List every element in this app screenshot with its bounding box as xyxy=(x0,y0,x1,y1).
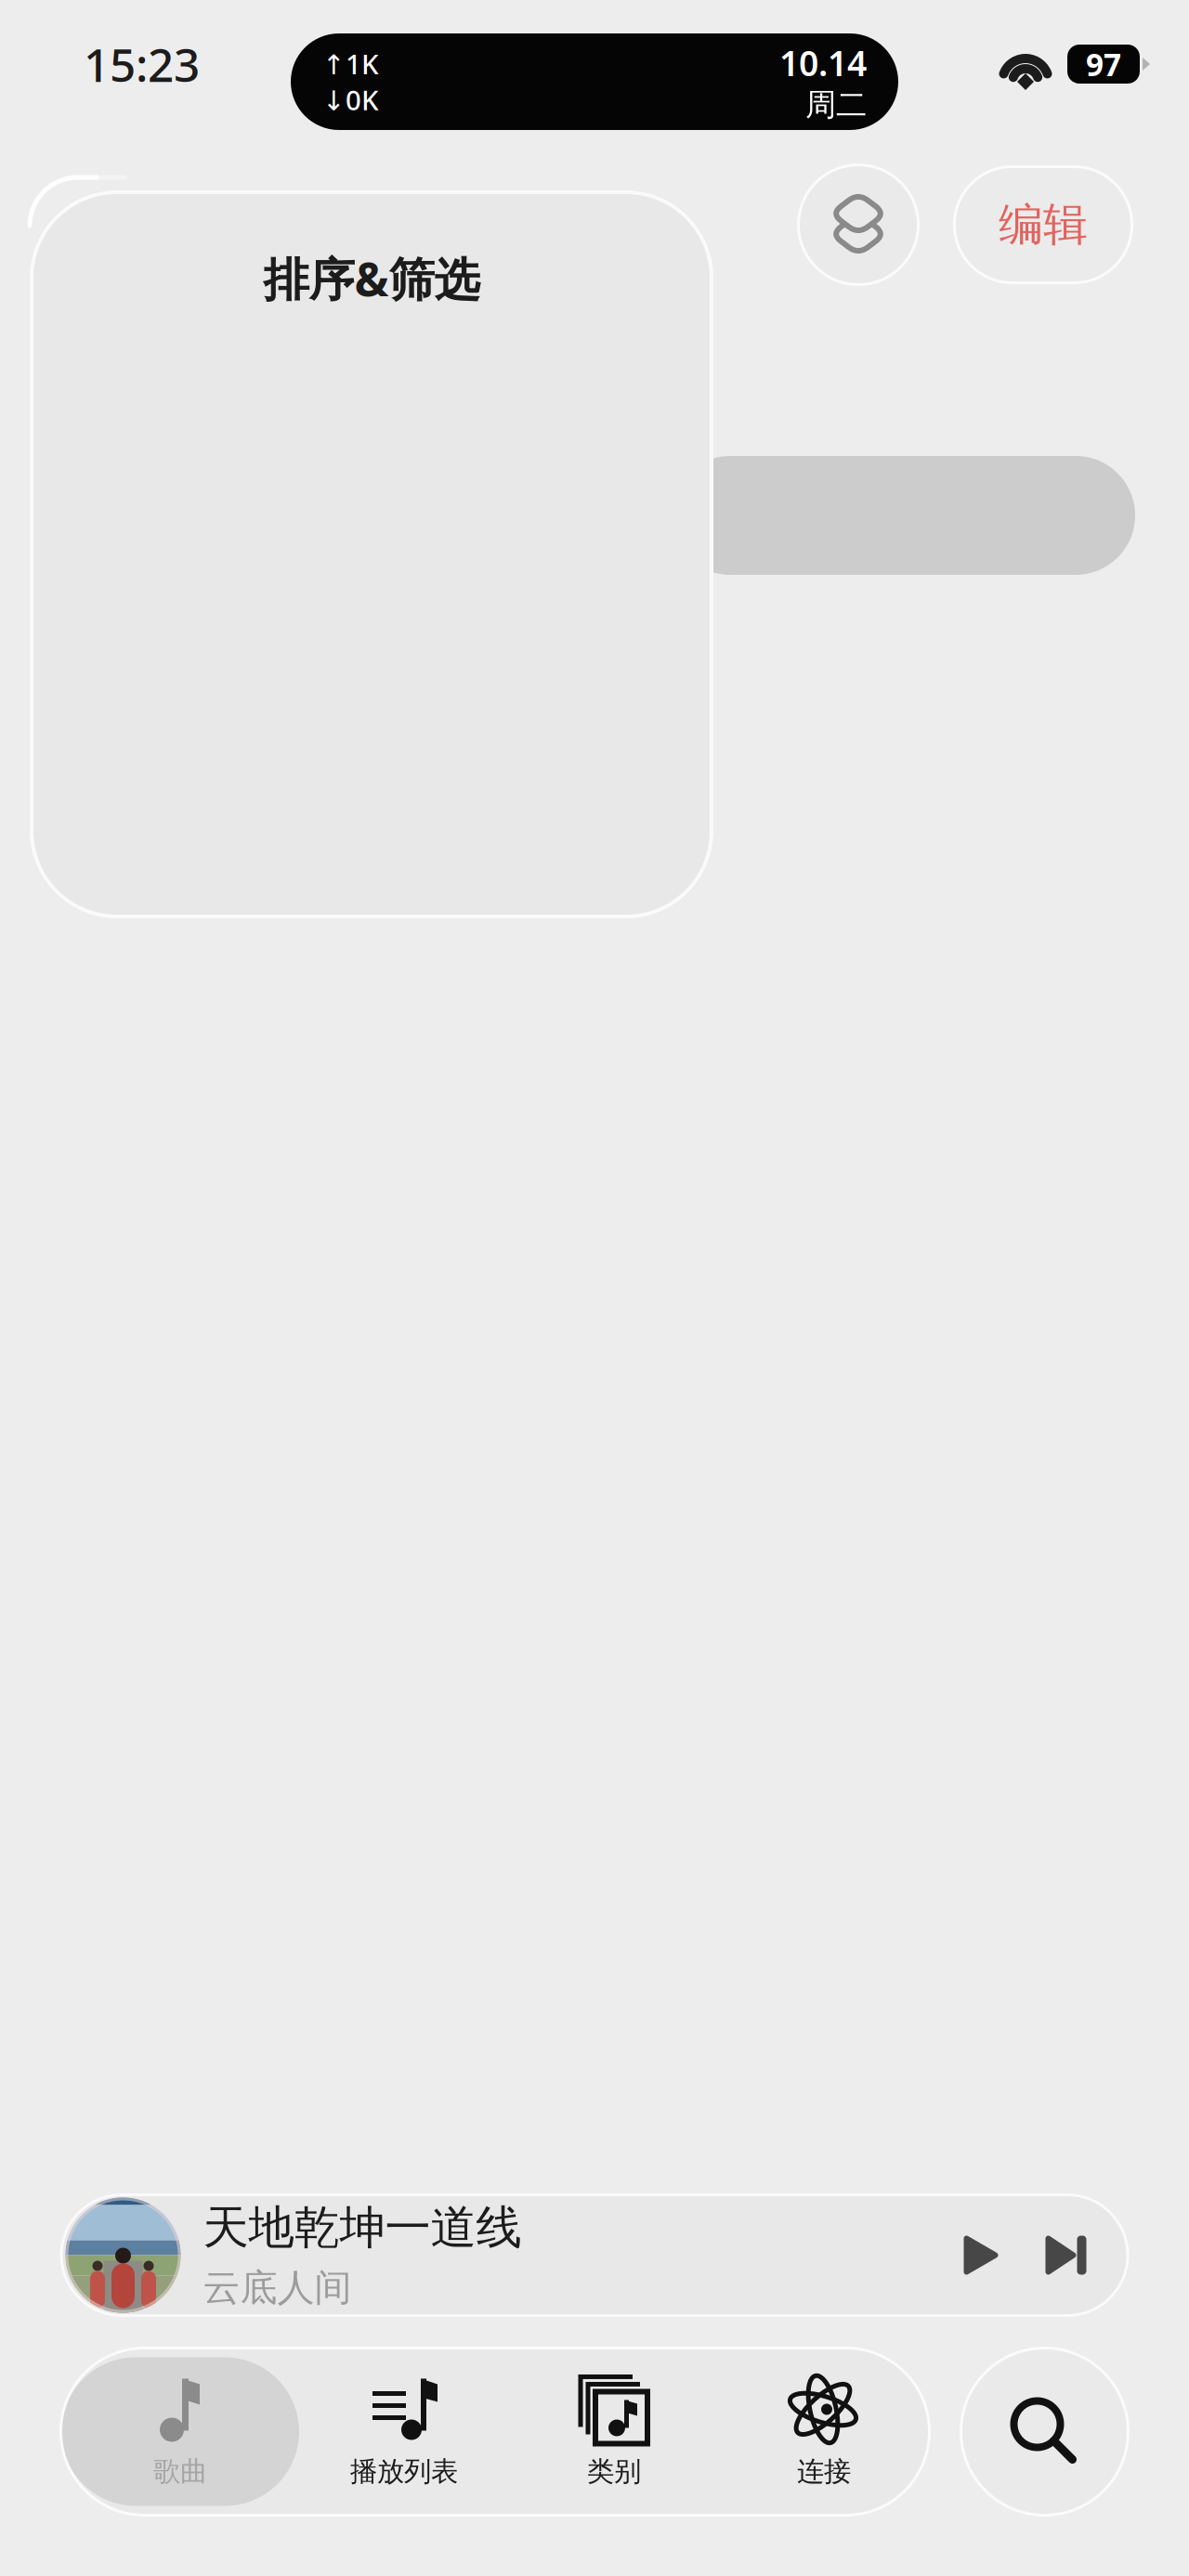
button[interactable]: 连接 xyxy=(719,2357,929,2506)
staticText: 15:23 xyxy=(84,34,200,94)
button[interactable]: 类别 xyxy=(509,2357,719,2506)
button[interactable]: Next track xyxy=(1019,2236,1129,2275)
staticText: 编辑 xyxy=(999,197,1088,252)
staticText: 周二 xyxy=(805,86,867,124)
button[interactable]: 歌曲 xyxy=(61,2357,299,2506)
staticText: 97 xyxy=(1086,44,1121,85)
staticText: 播放列表 xyxy=(350,2455,458,2488)
button[interactable]: 天地乾坤一道线 xyxy=(60,2193,1129,2317)
staticText: 类别 xyxy=(587,2455,641,2488)
button[interactable]: Search xyxy=(960,2347,1130,2517)
button[interactable]: 播放列表 xyxy=(299,2357,509,2506)
staticText: ↑1K xyxy=(322,46,379,82)
staticText: 云底人间 xyxy=(203,2265,352,2311)
staticText: 天地乾坤一道线 xyxy=(203,2200,522,2256)
staticText: ↓0K xyxy=(322,82,379,118)
staticText: 10.14 xyxy=(779,40,867,86)
button[interactable]: Play xyxy=(943,2236,1019,2275)
button[interactable]: 编辑 xyxy=(953,165,1133,284)
staticText: 连接 xyxy=(797,2455,851,2488)
button[interactable]: Layers xyxy=(797,163,920,286)
staticText: 歌曲 xyxy=(153,2455,207,2488)
staticText: 排序&筛选 xyxy=(263,248,480,309)
